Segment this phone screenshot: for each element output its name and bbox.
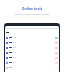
staticText: Online tools [0, 6, 64, 11]
button[interactable]: Tool icon [5, 50, 59, 55]
button[interactable]: Tool icon [5, 35, 59, 40]
other: Tool icon [6, 47, 8, 49]
button[interactable]: Tool icon [5, 40, 59, 45]
other: Tool icon [6, 42, 8, 44]
staticText: Lorem ipsum dolor sit amet consectetur [0, 13, 64, 16]
button[interactable]: Tool icon [5, 55, 59, 60]
other: Tool icon [6, 57, 8, 59]
button[interactable]: Tool icon [5, 60, 59, 65]
other: Tool icon [6, 52, 8, 54]
button[interactable]: Tool icon [5, 45, 59, 50]
other: Tool icon [6, 37, 8, 39]
other: Tool icon [6, 67, 8, 69]
button[interactable]: Tool icon [5, 65, 59, 70]
